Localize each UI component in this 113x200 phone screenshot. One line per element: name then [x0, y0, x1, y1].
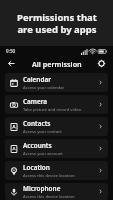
- button[interactable]: Camera: [5, 95, 108, 114]
- staticText: Contacts: [23, 119, 51, 128]
- staticText: Take picture and record video: [23, 107, 82, 113]
- staticText: Access your contact: [23, 129, 62, 135]
- staticText: Access this device location: [23, 173, 75, 179]
- staticText: Access your account: [23, 151, 63, 157]
- staticText: Access this device location: [23, 194, 75, 200]
- button[interactable]: Location: [5, 161, 108, 180]
- button[interactable]: Contacts: [5, 117, 108, 136]
- staticText: Microphone: [23, 184, 61, 193]
- button[interactable]: Settings: [95, 57, 108, 70]
- staticText: Calendar: [23, 75, 51, 84]
- staticText: Accounts: [23, 141, 52, 150]
- button[interactable]: Accounts: [5, 139, 108, 158]
- staticText: Access your calendar: [23, 85, 65, 91]
- staticText: 9:50: [6, 48, 16, 54]
- button[interactable]: Microphone: [5, 183, 108, 200]
- staticText: Permissions that are used by apps: [17, 11, 97, 36]
- staticText: Location: [23, 163, 50, 172]
- staticText: Camera: [23, 97, 48, 106]
- button[interactable]: Calendar: [5, 73, 108, 92]
- staticText: All permission: [32, 59, 82, 69]
- button[interactable]: Back: [5, 57, 18, 70]
